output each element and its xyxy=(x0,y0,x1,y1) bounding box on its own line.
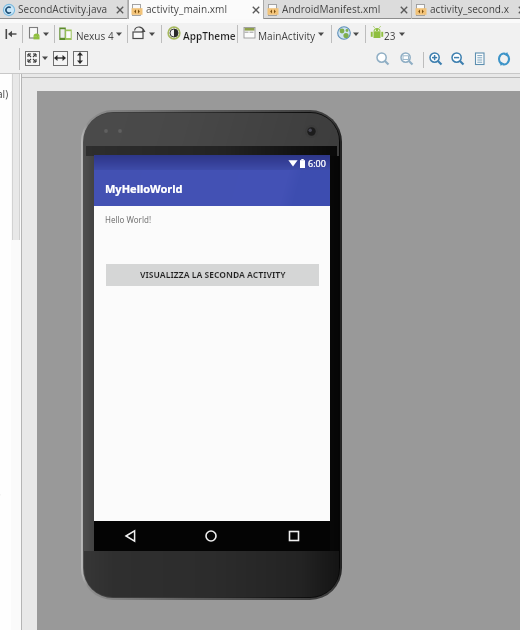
button[interactable]: Refresh xyxy=(497,52,511,66)
button[interactable]: activity_main.xml xyxy=(128,0,264,19)
staticText: MainActivity xyxy=(258,29,316,43)
button[interactable]: Home xyxy=(201,526,221,546)
staticText: AndroidManifest.xml xyxy=(282,2,381,16)
button[interactable]: Device configuration xyxy=(28,27,41,40)
button[interactable]: Back xyxy=(121,526,141,546)
button[interactable]: activity_second.x xyxy=(412,0,520,19)
staticText: activity_main.xml xyxy=(146,2,228,16)
staticText: Hello World! xyxy=(105,214,152,225)
staticText: 23 xyxy=(384,29,396,43)
button[interactable]: SecondActivity.java xyxy=(0,0,128,19)
button[interactable]: Orientation xyxy=(132,26,146,40)
button[interactable]: Fit height xyxy=(73,51,88,66)
staticText: SecondActivity.java xyxy=(18,2,108,16)
button[interactable]: Zoom in xyxy=(429,52,443,66)
button[interactable]: Theme xyxy=(167,26,181,40)
staticText: MyHelloWorld xyxy=(105,181,183,196)
button[interactable]: Zoom to fit xyxy=(25,51,40,66)
button[interactable]: Locale xyxy=(337,26,351,40)
button[interactable]: VISUALIZZA LA SECONDA ACTIVITY xyxy=(106,264,319,286)
button[interactable]: Recents xyxy=(284,526,304,546)
button[interactable]: Zoom 1:1 xyxy=(400,52,414,66)
button[interactable]: Fit width xyxy=(53,51,68,66)
staticText: activity_second.x xyxy=(430,2,509,16)
staticText: al) xyxy=(0,87,9,101)
button[interactable]: Zoom out xyxy=(451,52,465,66)
button[interactable]: Device xyxy=(59,27,72,41)
staticText: AppTheme xyxy=(183,29,236,43)
button[interactable]: AndroidManifest.xml xyxy=(264,0,412,19)
staticText: 6:00 xyxy=(308,157,326,169)
staticText: Nexus 4 xyxy=(76,29,114,43)
button[interactable]: Show layout decorations xyxy=(474,52,486,66)
button[interactable]: Activity xyxy=(243,26,257,40)
staticText: VISUALIZZA LA SECONDA ACTIVITY xyxy=(140,269,286,281)
button[interactable]: Collapse all xyxy=(5,28,17,40)
button[interactable]: Zoom to fit screen xyxy=(376,52,390,66)
button[interactable]: API level xyxy=(370,26,384,40)
